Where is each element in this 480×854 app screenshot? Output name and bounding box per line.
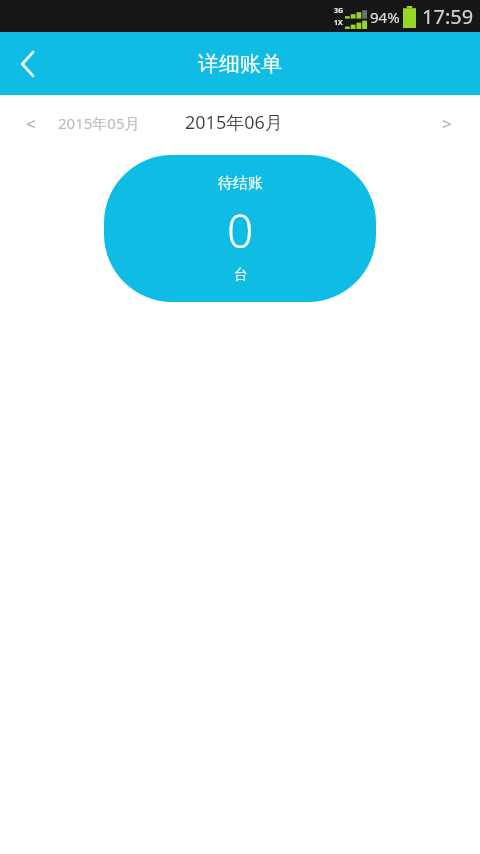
button[interactable]: 待结账 (104, 155, 376, 302)
staticText: 0 (227, 199, 254, 262)
staticText: 待结账 (218, 174, 263, 193)
button[interactable]: Previous month (12, 104, 50, 142)
staticText: 2015年05月 (58, 113, 140, 133)
button[interactable]: Next month (428, 104, 466, 142)
staticText: 2015年06月 (185, 110, 283, 135)
staticText: 详细账单 (198, 51, 282, 77)
staticText: 94% (370, 7, 400, 27)
staticText: 3G (334, 6, 344, 16)
staticText: > (442, 112, 452, 135)
button[interactable]: 2015年06月 (185, 110, 283, 135)
button[interactable]: Back (0, 36, 56, 92)
staticText: 台 (234, 266, 248, 284)
staticText: < (26, 112, 36, 135)
staticText: 1X (334, 18, 343, 28)
staticText: 17:59 (422, 3, 474, 30)
button[interactable]: 2015年05月 (58, 113, 140, 133)
